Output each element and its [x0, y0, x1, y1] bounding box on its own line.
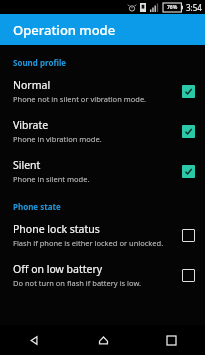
staticText: 3:54: [186, 2, 202, 13]
other: Unchecked: [182, 269, 195, 282]
other: Unchecked: [182, 229, 195, 242]
button[interactable]: Normal: [0, 71, 205, 111]
staticText: Silent: [13, 158, 41, 172]
other: Checked: [182, 165, 195, 178]
button[interactable]: Phone lock status: [0, 215, 205, 255]
button[interactable]: Back: [0, 325, 69, 355]
staticText: Do not turn on flash if battery is low.: [13, 278, 142, 288]
staticText: Normal: [13, 78, 51, 92]
button[interactable]: Home: [69, 325, 137, 355]
staticText: Phone lock status: [13, 222, 100, 236]
button[interactable]: Vibrate: [0, 111, 205, 151]
other: Checked: [182, 125, 195, 138]
staticText: Operation mode: [13, 21, 116, 39]
staticText: Phone in vibration mode.: [13, 134, 102, 144]
staticText: Off on low battery: [13, 262, 103, 276]
staticText: Sound profile: [13, 57, 67, 68]
staticText: Phone not in silent or vibration mode.: [13, 94, 147, 104]
button[interactable]: Off on low battery: [0, 255, 205, 295]
staticText: Vibrate: [13, 118, 49, 132]
other: Checked: [182, 85, 195, 98]
staticText: 76%: [167, 4, 178, 11]
button[interactable]: Silent: [0, 151, 205, 191]
staticText: Phone state: [13, 201, 61, 212]
staticText: Phone in silent mode.: [13, 174, 90, 184]
staticText: Flash if phone is either locked or unloc…: [13, 238, 164, 248]
button[interactable]: Recent apps: [137, 325, 205, 355]
